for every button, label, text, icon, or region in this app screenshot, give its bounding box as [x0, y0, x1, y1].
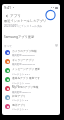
staticText: カメラのアプリ情報 [12, 49, 37, 52]
button[interactable]: ギャラリーアプリ [5, 57, 58, 66]
staticText: My Filesのアプリ情報 [12, 85, 39, 89]
staticText: ギャラリーアプリ [12, 58, 34, 61]
button[interactable]: My Filesのアプリ情報 [5, 84, 58, 93]
button[interactable]: カメラのアプリ情報 [5, 48, 58, 57]
button[interactable]: Back [5, 13, 60, 19]
staticText: 連絡先アプリ 最新です [12, 76, 40, 80]
staticText: アプリ [10, 14, 22, 19]
staticText: メッセージアプリ 更新 [12, 67, 41, 71]
button[interactable]: 最近インストールしたアプリ [4, 19, 58, 28]
button[interactable]: 設定アプリ [5, 93, 58, 102]
button[interactable]: Samsungアプリ更新 [4, 33, 58, 40]
other: Back [5, 14, 9, 18]
staticText: 最終更新 2023/03/18 [12, 62, 35, 65]
staticText: 設定アプリ [12, 94, 26, 97]
staticText: Samsungアプリ更新 [4, 35, 35, 39]
staticText: 9:41 [4, 5, 12, 10]
staticText: バージョン 3.8 [12, 98, 29, 101]
button[interactable]: 電話アプリ [5, 102, 58, 111]
staticText: 2023/04/01 にインストール済み [4, 24, 43, 28]
staticText: 最終更新 2022/11 [12, 90, 32, 93]
staticText: バージョン 5.2.1 [12, 72, 31, 75]
staticText: すべて [4, 44, 12, 47]
staticText: 電話アプリ [12, 103, 26, 106]
button[interactable]: 連絡先アプリ 最新です [5, 75, 58, 84]
staticText: 最近インストールしたアプリ [4, 19, 47, 23]
staticText: バージョン 9.1 [12, 107, 29, 110]
button[interactable]: メッセージアプリ 更新 [5, 66, 58, 75]
button[interactable]: Sort [55, 44, 58, 47]
staticText: バージョン 12.0 [12, 81, 30, 84]
staticText: 最終更新 2023/04/01 [12, 53, 35, 56]
